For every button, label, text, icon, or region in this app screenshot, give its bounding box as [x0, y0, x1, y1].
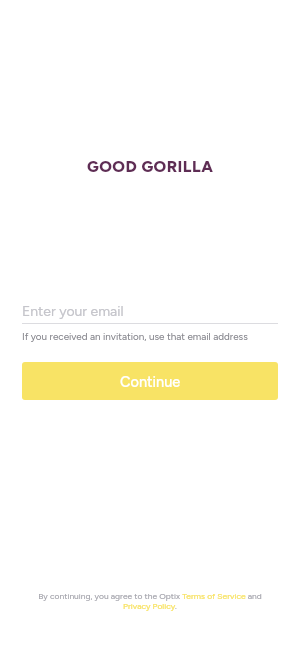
button[interactable]: Continue — [22, 362, 278, 400]
button[interactable]: Email address field — [22, 303, 278, 320]
staticText: GOOD GORILLA — [87, 157, 214, 176]
button[interactable]: By continuing, you agree to the Optix Te… — [34, 591, 266, 611]
staticText: If you received an invitation, use that … — [22, 331, 248, 343]
staticText: By continuing, you agree to the Optix Te… — [34, 591, 266, 611]
staticText: Continue — [120, 373, 181, 390]
staticText: Enter your email — [22, 303, 124, 320]
